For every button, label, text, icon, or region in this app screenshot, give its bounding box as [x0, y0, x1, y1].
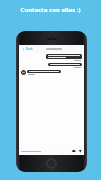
button[interactable]: [46, 54, 82, 59]
button[interactable]: [27, 70, 61, 73]
button[interactable]: Back: [21, 47, 34, 51]
button[interactable]: Send: [78, 149, 82, 153]
button[interactable]: Home: [46, 158, 57, 169]
button[interactable]: [48, 63, 82, 66]
button[interactable]: Camera: [72, 149, 76, 153]
staticText: Contacta con ellas :): [0, 6, 101, 14]
button[interactable]: Profile photo: [21, 70, 26, 75]
staticText: Back: [26, 47, 33, 51]
button[interactable]: Escribe tu mensaje: [21, 151, 72, 152]
